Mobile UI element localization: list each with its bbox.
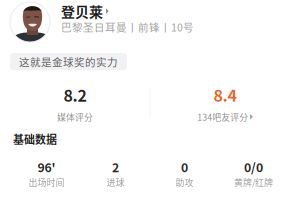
staticText: 进球 xyxy=(106,176,124,189)
staticText: 134吧友评分 xyxy=(197,110,248,123)
staticText: 这就是金球奖的实力 xyxy=(19,54,118,69)
staticText: 出场时间 xyxy=(28,176,64,189)
staticText: 8.4 xyxy=(213,83,236,106)
button[interactable]: 登贝莱 xyxy=(0,2,300,42)
staticText: 基础数据 xyxy=(13,131,57,147)
button[interactable]: 这就是金球奖的实力 xyxy=(10,53,127,70)
staticText: 0/0 xyxy=(244,158,263,176)
staticText: 96' xyxy=(37,158,55,176)
staticText: 媒体评分 xyxy=(57,110,93,123)
staticText: 0 xyxy=(181,158,188,176)
staticText: 登贝莱 xyxy=(61,1,103,21)
staticText: 黄牌/红牌 xyxy=(234,176,273,189)
button[interactable]: 8.4 xyxy=(150,83,300,123)
staticText: 助攻 xyxy=(175,176,193,189)
staticText: 2 xyxy=(112,158,119,176)
staticText: 巴黎圣日耳曼丨前锋丨10号 xyxy=(61,19,194,35)
staticText: 8.2 xyxy=(63,83,86,106)
